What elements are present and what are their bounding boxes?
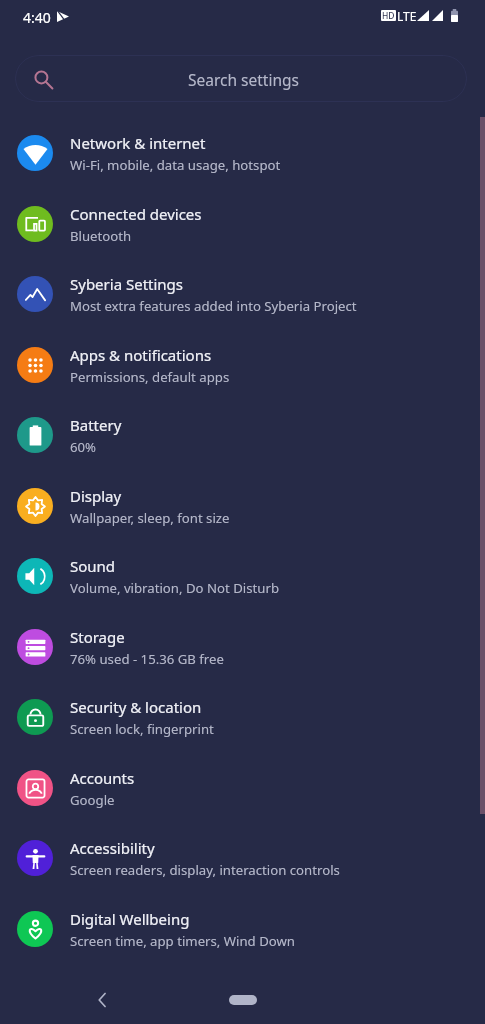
staticText: Wallpaper, sleep, font size (70, 509, 230, 527)
staticText: Storage (70, 627, 125, 647)
staticText: 4:40 (23, 8, 51, 27)
button[interactable]: Battery (0, 400, 485, 470)
button[interactable]: Apps & notifications (0, 330, 485, 400)
staticText: Wi-Fi, mobile, data usage, hotspot (70, 156, 281, 174)
button[interactable]: Syberia Settings (0, 259, 485, 329)
staticText: Digital Wellbeing (70, 909, 190, 929)
staticText: HD (382, 10, 395, 21)
staticText: Apps & notifications (70, 345, 212, 365)
staticText: Most extra features added into Syberia P… (70, 297, 357, 315)
staticText: Screen time, app timers, Wind Down (70, 932, 296, 950)
button[interactable]: Digital Wellbeing (0, 894, 485, 964)
staticText: Network & internet (70, 133, 206, 153)
button[interactable]: Display (0, 471, 485, 541)
button[interactable]: Storage (0, 612, 485, 682)
staticText: 60% (70, 438, 97, 456)
staticText: Battery (70, 415, 122, 435)
staticText: Security & location (70, 697, 202, 717)
staticText: Accessibility (70, 838, 155, 858)
button[interactable]: Connected devices (0, 189, 485, 259)
staticText: Syberia Settings (70, 274, 184, 294)
staticText: Sound (70, 556, 116, 576)
staticText: Volume, vibration, Do Not Disturb (70, 579, 279, 597)
button[interactable]: Sound (0, 541, 485, 611)
staticText: LTE (397, 8, 417, 24)
staticText: Bluetooth (70, 227, 132, 245)
button[interactable]: Accessibility (0, 823, 485, 893)
staticText: Screen lock, fingerprint (70, 720, 214, 738)
staticText: Connected devices (70, 204, 202, 224)
staticText: Screen readers, display, interaction con… (70, 861, 340, 879)
staticText: 76% used - 15.36 GB free (70, 650, 224, 668)
button[interactable]: Search settings (15, 55, 467, 102)
staticText: Search settings (188, 69, 299, 90)
button[interactable]: Security & location (0, 682, 485, 752)
staticText: Google (70, 791, 115, 809)
staticText: Permissions, default apps (70, 368, 230, 386)
button[interactable]: Network & internet (0, 118, 485, 188)
button[interactable]: Home (229, 995, 257, 1005)
button[interactable]: Back (95, 991, 109, 1009)
staticText: Accounts (70, 768, 135, 788)
staticText: Display (70, 486, 122, 506)
button[interactable]: Accounts (0, 753, 485, 823)
